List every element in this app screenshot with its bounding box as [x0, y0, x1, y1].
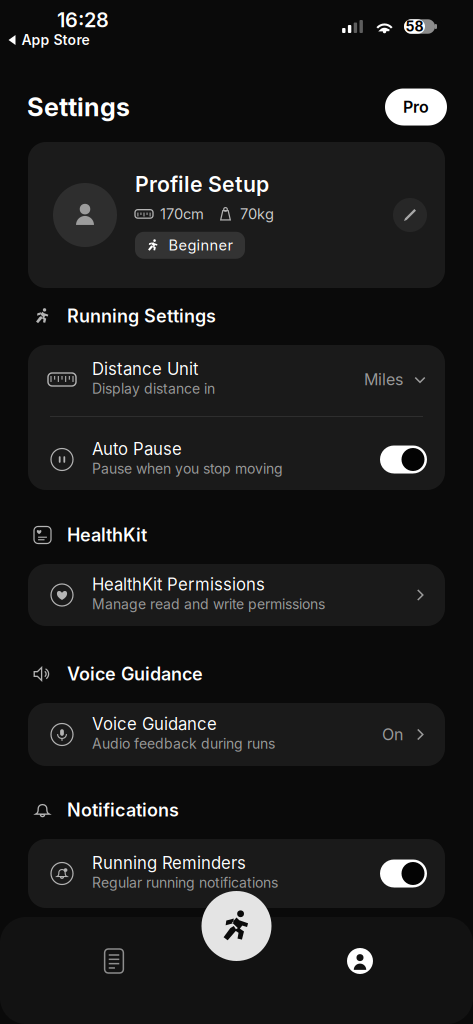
staticText: Miles [364, 370, 403, 389]
staticText: App Store [21, 31, 89, 48]
staticText: HealthKit [67, 524, 147, 546]
button[interactable]: HealthKit Permissions [28, 564, 445, 626]
staticText: Pro [403, 97, 429, 117]
button[interactable]: Distance Unit [28, 348, 445, 411]
staticText: HealthKit Permissions [92, 574, 265, 595]
staticText: Distance Unit [92, 359, 198, 379]
staticText: Voice Guidance [67, 663, 203, 685]
staticText: Running Settings [67, 305, 216, 327]
button[interactable]: Profile [314, 930, 406, 992]
button[interactable]: Running Reminders [28, 839, 445, 908]
staticText: 170cm [160, 205, 204, 223]
staticText: Notifications [67, 799, 179, 821]
staticText: Settings [27, 92, 130, 122]
staticText: Manage read and write permissions [92, 596, 325, 612]
staticText: Profile Setup [135, 171, 269, 197]
staticText: Running Reminders [92, 853, 246, 873]
button[interactable]: Pro [385, 88, 447, 125]
staticText: Audio feedback during runs [92, 735, 275, 752]
button[interactable]: Profile Setup [28, 142, 445, 288]
button[interactable]: Start run [201, 891, 271, 961]
staticText: Display distance in [92, 380, 215, 397]
staticText: Regular running notifications [92, 874, 278, 891]
staticText: Pause when you stop moving [92, 460, 283, 477]
staticText: On [382, 725, 403, 744]
staticText: Auto Pause [92, 439, 182, 459]
staticText: 70kg [240, 205, 274, 223]
button[interactable]: Voice Guidance [28, 703, 445, 766]
staticText: 16:28 [57, 8, 109, 32]
staticText: Voice Guidance [92, 714, 217, 734]
button[interactable]: Activity [68, 930, 160, 992]
staticText: 58 [405, 18, 423, 35]
staticText: Beginner [168, 236, 233, 254]
button[interactable]: Auto Pause [28, 428, 445, 491]
